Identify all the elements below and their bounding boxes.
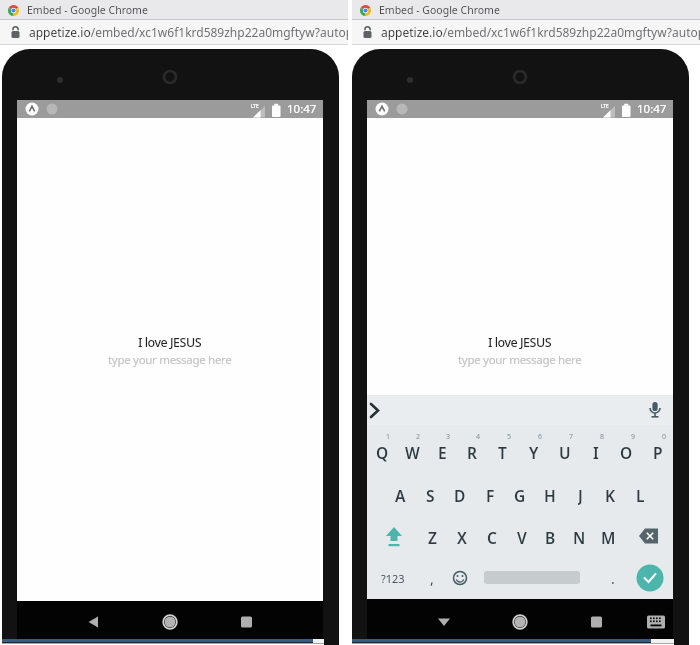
button[interactable]: Embed - Google Chrome bbox=[0, 0, 348, 19]
staticText: I love JESUS bbox=[138, 334, 202, 349]
staticText: 0 bbox=[662, 432, 667, 442]
staticText: Embed - Google Chrome bbox=[27, 3, 148, 17]
staticText: M bbox=[601, 527, 616, 547]
button[interactable] bbox=[17, 601, 323, 639]
staticText: K bbox=[605, 485, 616, 505]
staticText: 10:47 bbox=[287, 101, 317, 117]
staticText: J bbox=[578, 485, 583, 505]
staticText: Y bbox=[529, 442, 539, 462]
staticText: Q bbox=[376, 442, 389, 462]
staticText: LTE bbox=[601, 103, 609, 109]
staticText: 2 bbox=[416, 432, 421, 442]
staticText: LTE bbox=[251, 103, 259, 109]
staticText: O bbox=[620, 442, 633, 462]
staticText: type your message here bbox=[458, 352, 582, 368]
staticText: 10:47 bbox=[637, 101, 667, 117]
button[interactable]: appetize.io/embed/xc1w6f1krd589zhp22a0mg… bbox=[0, 20, 348, 44]
staticText: X bbox=[457, 527, 467, 547]
staticText: 4 bbox=[476, 432, 481, 442]
staticText: Embed - Google Chrome bbox=[379, 3, 500, 17]
staticText: E bbox=[438, 442, 447, 462]
staticText: 3 bbox=[446, 432, 451, 442]
staticText: H bbox=[544, 485, 556, 505]
staticText: appetize.io/embed/xc1w6f1krd589zhp22a0mg… bbox=[381, 24, 700, 40]
staticText: 9 bbox=[631, 432, 636, 442]
staticText: I bbox=[593, 442, 599, 462]
staticText: S bbox=[426, 485, 435, 505]
staticText: Z bbox=[428, 527, 437, 547]
staticText: R bbox=[467, 442, 477, 462]
staticText: F bbox=[486, 485, 495, 505]
staticText: L bbox=[636, 485, 645, 505]
staticText: G bbox=[514, 485, 526, 505]
staticText: T bbox=[498, 442, 507, 462]
staticText: A bbox=[395, 485, 406, 505]
staticText: W bbox=[405, 442, 420, 462]
staticText: 6 bbox=[538, 432, 543, 442]
staticText: 1 bbox=[386, 432, 391, 442]
staticText: V bbox=[517, 527, 527, 547]
button[interactable]: appetize.io/embed/xc1w6f1krd589zhp22a0mg… bbox=[352, 20, 700, 44]
staticText: D bbox=[454, 485, 466, 505]
staticText: 7 bbox=[569, 432, 574, 442]
staticText: , bbox=[430, 569, 434, 588]
staticText: P bbox=[653, 442, 663, 462]
staticText: U bbox=[559, 442, 571, 462]
button[interactable] bbox=[636, 564, 664, 592]
staticText: N bbox=[573, 527, 586, 547]
staticText: I love JESUS bbox=[488, 334, 552, 349]
staticText: 5 bbox=[507, 432, 512, 442]
button[interactable] bbox=[367, 395, 673, 425]
staticText: type your message here bbox=[108, 352, 232, 368]
staticText: C bbox=[487, 527, 497, 547]
staticText: ?123 bbox=[381, 571, 405, 586]
staticText: . bbox=[611, 569, 615, 588]
button[interactable] bbox=[367, 425, 673, 599]
staticText: 8 bbox=[600, 432, 605, 442]
button[interactable]: Embed - Google Chrome bbox=[352, 0, 700, 19]
staticText: B bbox=[545, 527, 556, 547]
staticText: appetize.io/embed/xc1w6f1krd589zhp22a0mg… bbox=[29, 24, 348, 40]
button[interactable] bbox=[367, 599, 673, 639]
